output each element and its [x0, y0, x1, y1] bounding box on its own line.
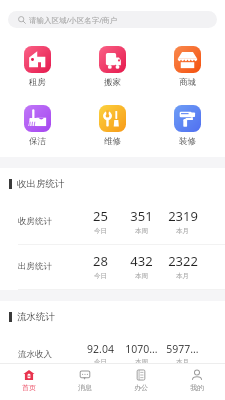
button[interactable]: 首页: [0, 369, 57, 392]
button[interactable]: 办公: [113, 369, 169, 392]
staticText: 92.04: [87, 342, 114, 356]
staticText: 本月: [176, 227, 189, 235]
staticText: 5977…: [166, 342, 199, 356]
staticText: 本周: [135, 358, 148, 366]
staticText: 本周: [135, 272, 148, 280]
staticText: 本月: [176, 358, 189, 366]
staticText: 收房统计: [18, 216, 52, 227]
button[interactable]: 我的: [169, 369, 225, 392]
staticText: 我的: [190, 383, 204, 392]
staticText: 出房统计: [18, 261, 52, 272]
staticText: 今日: [94, 272, 107, 280]
button[interactable]: 装修: [150, 105, 225, 147]
staticText: 本月: [176, 272, 189, 280]
staticText: 流水收入: [18, 349, 52, 360]
staticText: 收出房统计: [17, 178, 65, 190]
button[interactable]: 搬家: [75, 46, 150, 88]
button[interactable]: 出房统计: [0, 245, 225, 290]
button[interactable]: 消息: [57, 369, 113, 392]
staticText: 今日: [94, 358, 107, 366]
button[interactable]: 收房统计: [0, 200, 225, 245]
staticText: 搬家: [104, 77, 121, 88]
staticText: 办公: [134, 383, 148, 392]
staticText: 2319: [168, 207, 198, 225]
staticText: 1070…: [125, 342, 158, 356]
staticText: 请输入区域/小区名字/商户: [29, 15, 118, 25]
staticText: 本周: [135, 227, 148, 235]
button[interactable]: 请输入区域/小区名字/商户: [8, 11, 217, 28]
button[interactable]: 维修: [75, 105, 150, 147]
staticText: 28: [93, 252, 108, 270]
staticText: 维修: [104, 136, 121, 147]
staticText: 432: [130, 252, 153, 270]
staticText: 装修: [179, 136, 196, 147]
staticText: 351: [130, 207, 153, 225]
staticText: 商城: [179, 77, 196, 88]
staticText: 租房: [29, 77, 46, 88]
staticText: 消息: [78, 383, 92, 392]
button[interactable]: 流水收入: [0, 333, 225, 378]
staticText: 今日: [94, 227, 107, 235]
button[interactable]: 保洁: [0, 105, 75, 147]
button[interactable]: 租房: [0, 46, 75, 88]
staticText: 保洁: [29, 136, 46, 147]
button[interactable]: 商城: [150, 46, 225, 88]
staticText: 首页: [22, 383, 36, 392]
staticText: 流水统计: [17, 311, 55, 323]
staticText: 2322: [168, 252, 198, 270]
staticText: 25: [93, 207, 108, 225]
